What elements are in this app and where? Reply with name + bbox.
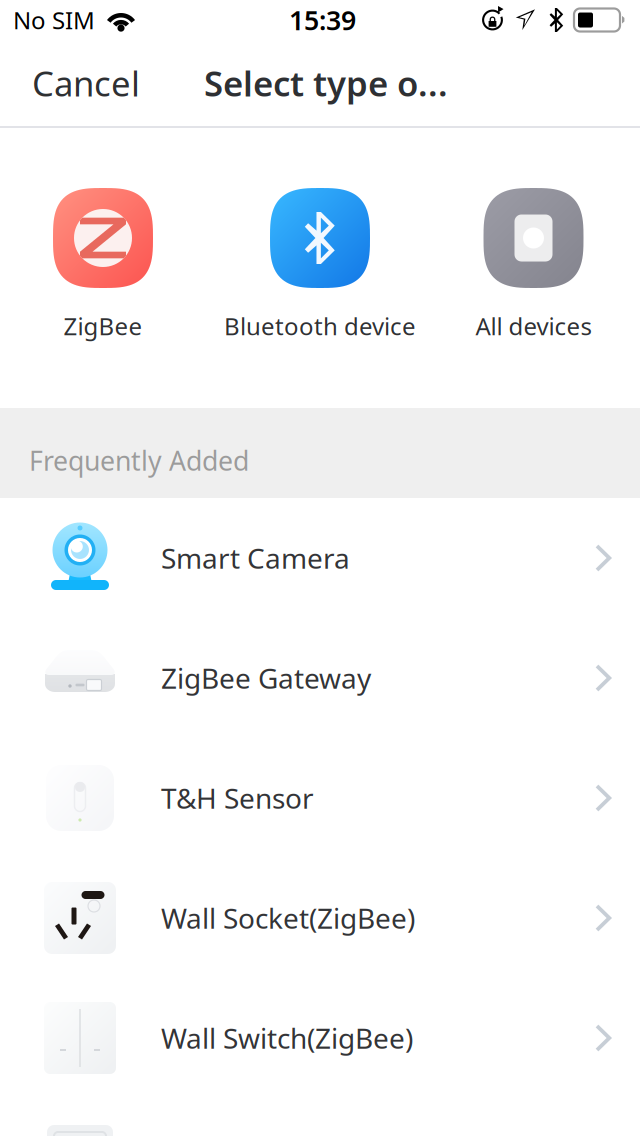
- button[interactable]: ZigBee Gateway: [0, 618, 640, 738]
- staticText: Wall Switch(ZigBee): [161, 1019, 413, 1057]
- staticText: No SIM: [13, 4, 95, 36]
- button[interactable]: All devices: [434, 128, 633, 408]
- staticText: Cancel: [32, 60, 140, 106]
- staticText: Wall Socket(ZigBee): [161, 899, 415, 937]
- staticText: All devices: [475, 310, 591, 342]
- button[interactable]: Wall Socket(ZigBee): [0, 858, 640, 978]
- staticText: Bluetooth device: [224, 310, 416, 342]
- button[interactable]: ZigBee: [0, 128, 206, 408]
- button[interactable]: T&H Sensor: [0, 738, 640, 858]
- button[interactable]: Wall Switch(ZigBee): [0, 978, 640, 1098]
- staticText: ZigBee: [63, 310, 142, 342]
- button[interactable]: Cancel: [0, 42, 164, 124]
- staticText: ZigBee Gateway: [161, 659, 371, 697]
- staticText: Select type o...: [204, 60, 448, 106]
- button[interactable]: Smart Camera: [0, 498, 640, 618]
- staticText: Smart Camera: [161, 539, 350, 577]
- button[interactable]: Bluetooth device: [206, 128, 434, 408]
- staticText: Frequently Added: [29, 443, 249, 478]
- staticText: 15:39: [289, 2, 356, 38]
- staticText: T&H Sensor: [161, 779, 314, 817]
